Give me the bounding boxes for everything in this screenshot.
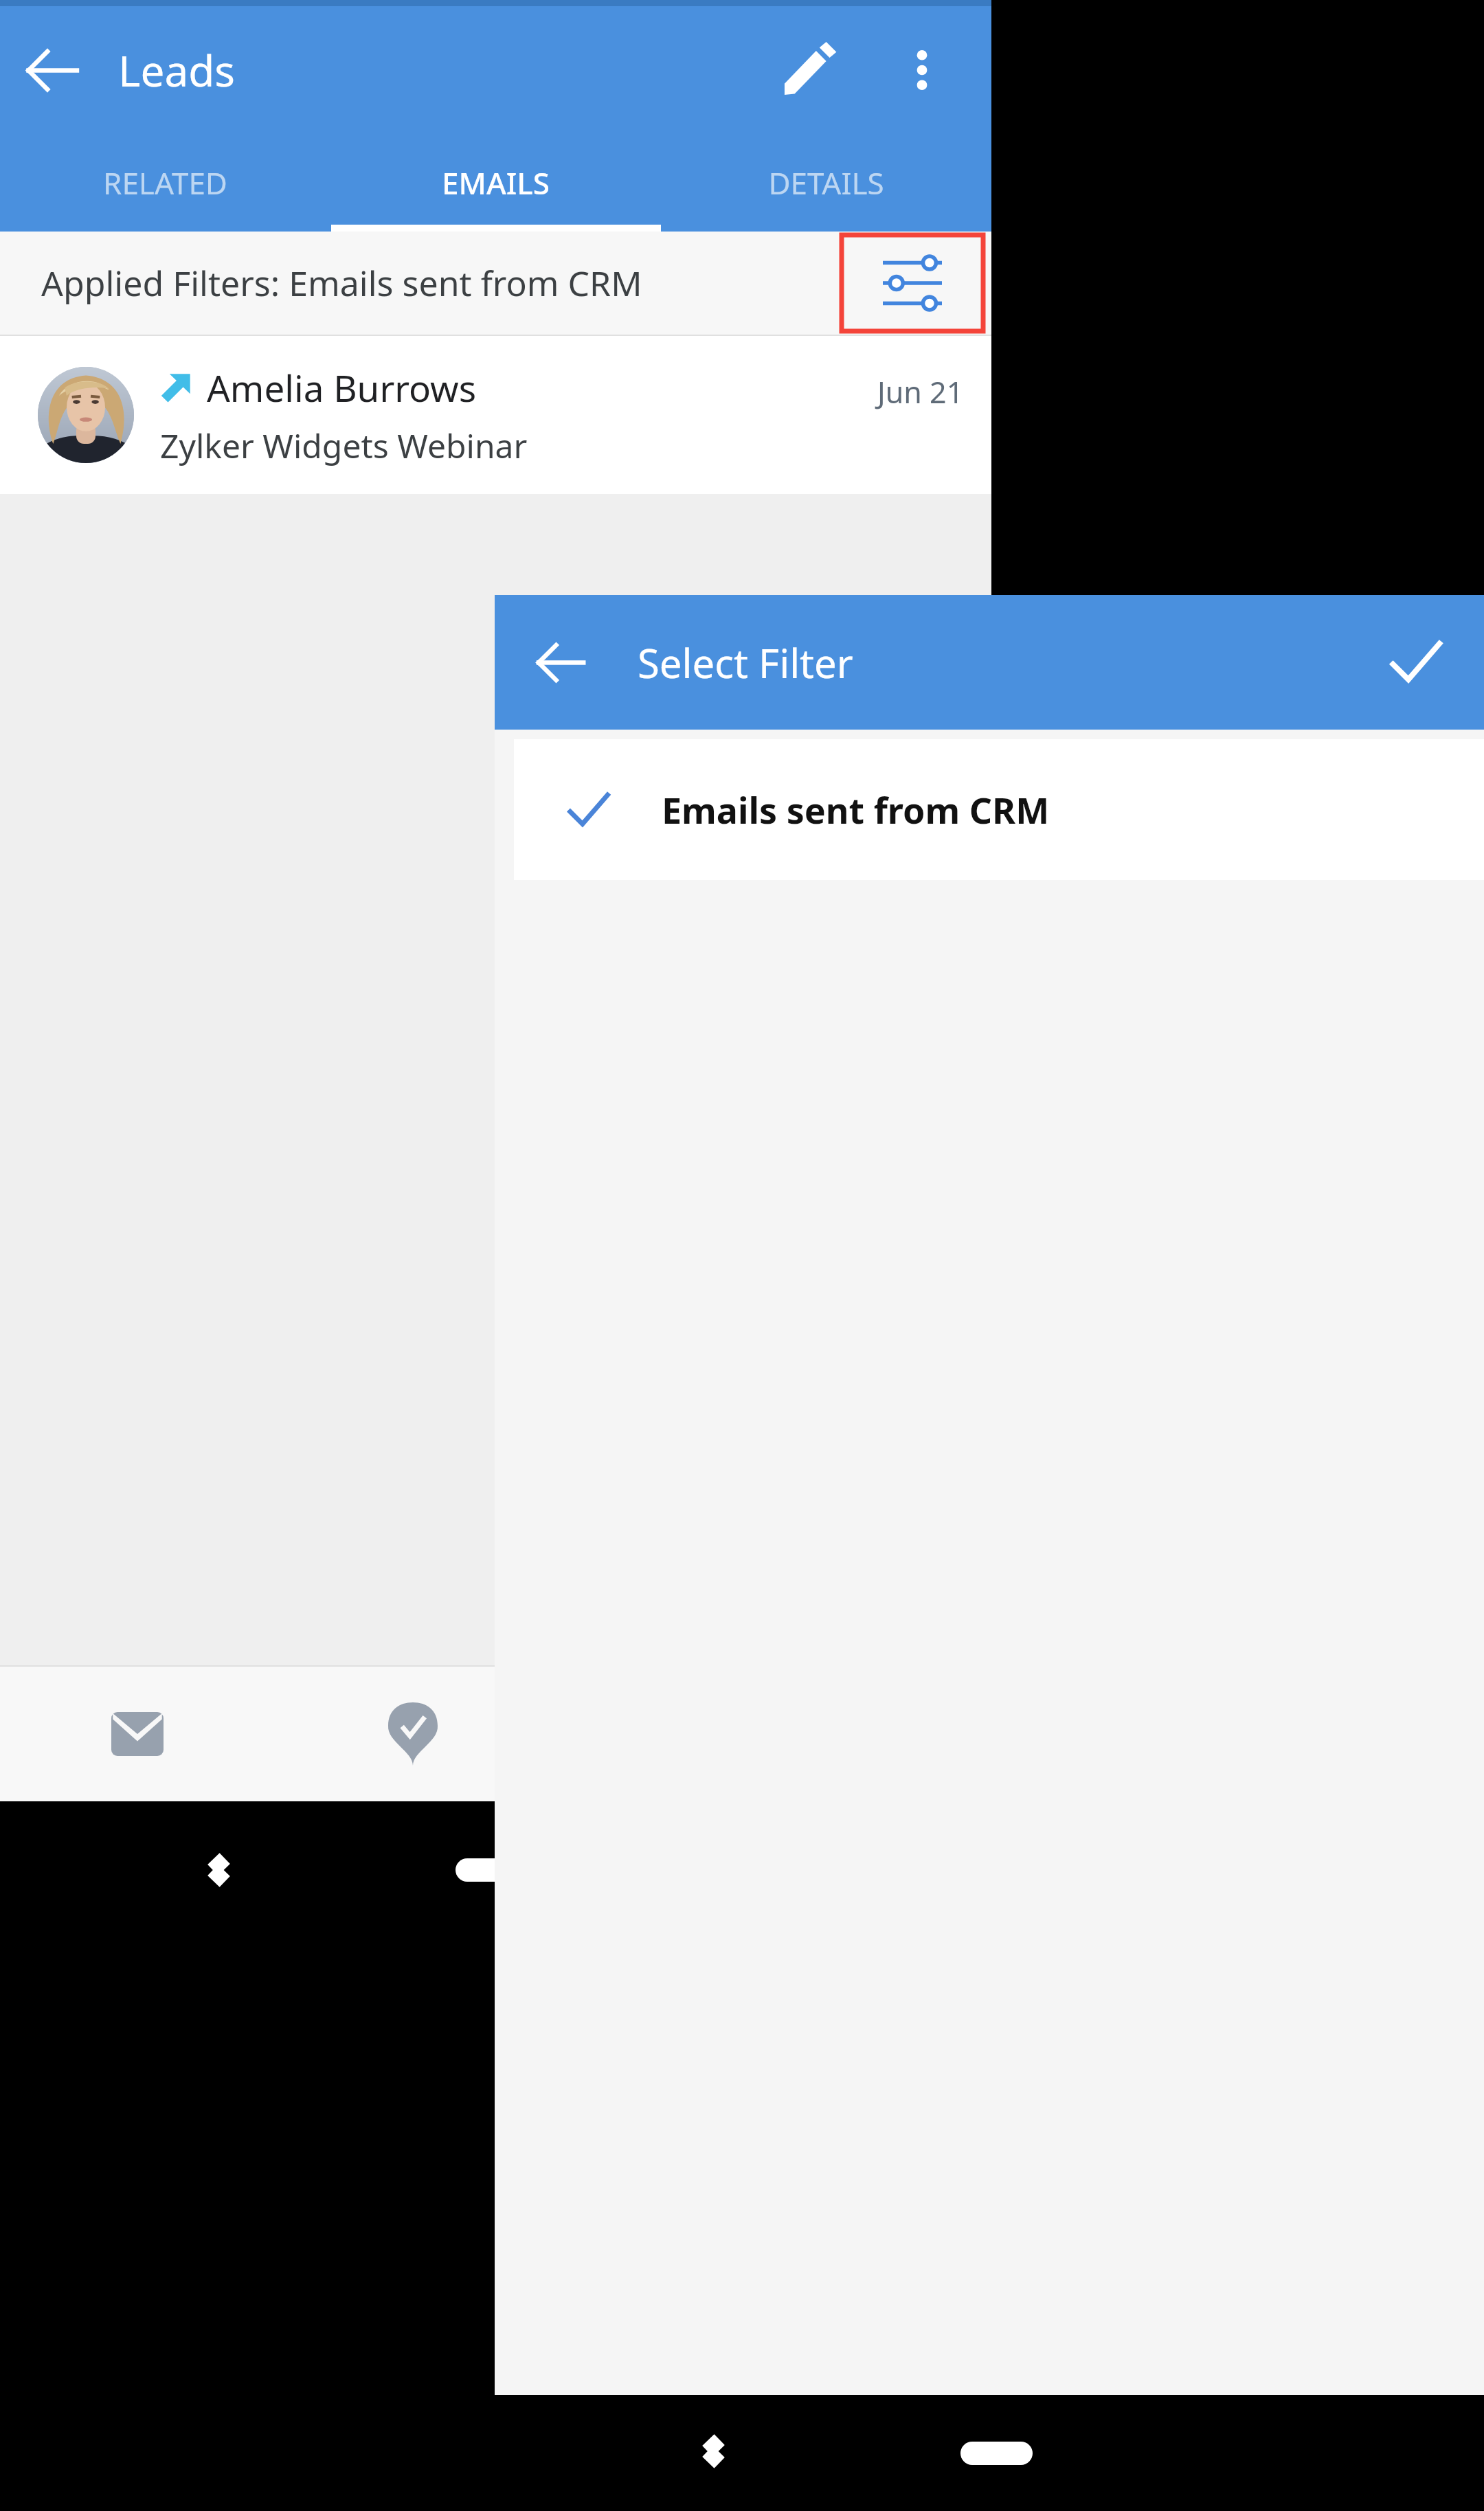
button[interactable]: RELATED [0,133,330,232]
button[interactable]: Edit [758,19,861,122]
button[interactable]: Back [508,611,611,714]
staticText: Jun 21 [877,372,964,412]
button[interactable]: DETAILS [661,133,991,232]
button[interactable]: Check-ins [275,1667,550,1801]
button[interactable]: Amelia Burrows [0,336,991,494]
staticText: Applied Filters: Emails sent from CRM [41,260,642,306]
staticText: DETAILS [768,162,884,203]
staticText: Emails sent from CRM [662,785,1050,834]
button[interactable]: More options [877,25,967,115]
staticText: Amelia Burrows [207,363,477,412]
button[interactable]: Emails [0,1667,275,1801]
button[interactable]: Back [0,19,103,122]
staticText: Leads [118,41,236,99]
button[interactable]: Apply filter [1360,607,1470,717]
staticText: EMAILS [442,162,550,203]
button[interactable]: Emails sent from CRM [514,739,1484,880]
staticText: Zylker Widgets Webinar [160,423,528,468]
staticText: RELATED [103,162,227,203]
button[interactable]: EMAILS [330,133,661,232]
staticText: Select Filter [638,635,853,690]
button[interactable]: Filter [840,234,985,333]
